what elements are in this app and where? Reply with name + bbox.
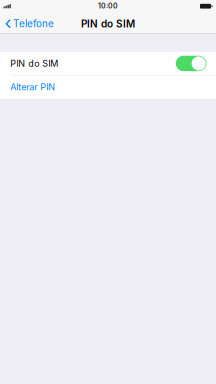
button[interactable]: Alterar PIN xyxy=(0,75,216,98)
staticText: Telefone xyxy=(13,18,54,30)
staticText: 10:00 xyxy=(98,2,118,10)
staticText: PIN do SIM xyxy=(10,58,58,69)
button[interactable]: Telefone xyxy=(0,14,60,34)
staticText: Alterar PIN xyxy=(10,81,55,92)
staticText: PIN do SIM xyxy=(81,18,135,30)
button[interactable]: PIN do SIM xyxy=(0,52,216,75)
